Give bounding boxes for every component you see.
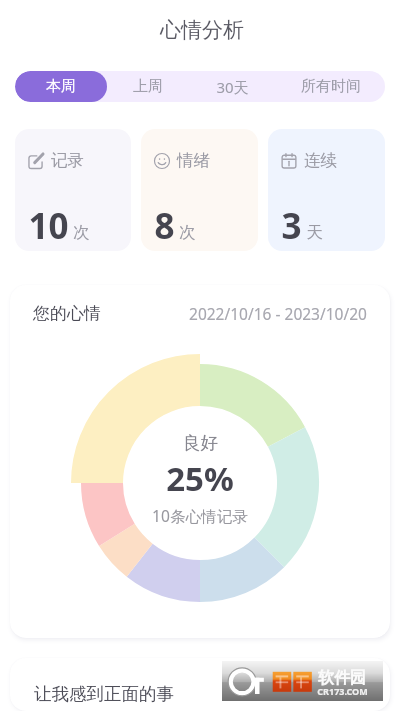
staticText: 连续 <box>304 150 337 171</box>
staticText: 上周 <box>133 77 163 96</box>
staticText: 3 <box>281 202 302 250</box>
button[interactable]: 所有时间 <box>276 71 385 102</box>
button[interactable]: 记录 <box>15 129 131 251</box>
staticText: CR173.COM <box>317 685 368 697</box>
staticText: 30天 <box>216 77 249 97</box>
staticText: 10条心情记录 <box>152 505 248 526</box>
staticText: 记录 <box>51 150 84 171</box>
other: 连续 <box>281 153 297 169</box>
staticText: 10 <box>28 202 69 250</box>
staticText: 让我感到正面的事 <box>34 683 174 705</box>
button[interactable]: 本周 <box>15 71 107 102</box>
staticText: 情绪 <box>177 150 210 171</box>
staticText: 次 <box>73 222 90 243</box>
staticText: 心情分析 <box>160 17 244 43</box>
other: 记录 <box>28 153 44 169</box>
button[interactable]: 连续 <box>268 129 385 251</box>
staticText: 所有时间 <box>301 77 361 96</box>
staticText: 良好 <box>183 432 218 454</box>
staticText: 8 <box>154 202 175 250</box>
staticText: 天 <box>306 222 323 243</box>
staticText: 2022/10/16 - 2023/10/20 <box>189 303 367 324</box>
button[interactable]: 上周 <box>107 71 188 102</box>
button[interactable]: 情绪 <box>141 129 258 251</box>
staticText: 软件园 <box>318 668 366 688</box>
staticText: 本周 <box>46 77 76 96</box>
staticText: 25% <box>166 456 234 501</box>
button[interactable]: 30天 <box>188 71 276 102</box>
staticText: 次 <box>179 222 196 243</box>
other: 情绪 <box>154 153 170 169</box>
staticText: 您的心情 <box>33 303 101 324</box>
